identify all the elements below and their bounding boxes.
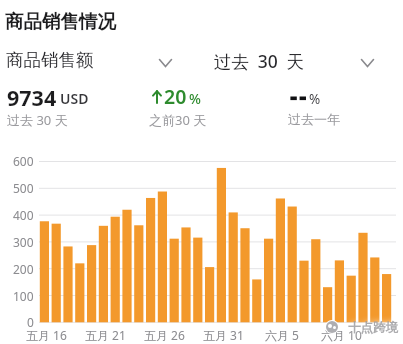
staticText: 500 xyxy=(13,180,34,196)
staticText: 五月 31 xyxy=(203,327,244,343)
staticText: % xyxy=(309,90,321,108)
staticText: 六月 10 xyxy=(321,327,362,343)
button[interactable]: 商品销售额 xyxy=(0,46,185,78)
staticText: 600 xyxy=(13,153,34,169)
staticText: 400 xyxy=(13,207,34,223)
staticText: 过去 30 天 xyxy=(214,49,305,73)
button[interactable]: 过去 30 天 xyxy=(200,46,385,78)
staticText: 300 xyxy=(13,234,34,250)
staticText: 五月 16 xyxy=(26,327,67,343)
staticText: 商品销售情况 xyxy=(5,10,116,33)
staticText: 商品销售额 xyxy=(6,49,94,71)
staticText: 六月 5 xyxy=(265,327,299,343)
staticText: 过去一年 xyxy=(288,111,340,127)
staticText: 之前30 天 xyxy=(149,111,207,129)
staticText: USD xyxy=(60,89,89,108)
staticText: 200 xyxy=(13,261,34,277)
staticText: 五月 21 xyxy=(85,327,126,343)
staticText: 100 xyxy=(13,288,34,304)
staticText: % xyxy=(189,89,201,108)
staticText: 0 xyxy=(27,314,34,330)
staticText: 9734 xyxy=(7,83,57,112)
staticText: 五月 26 xyxy=(144,327,185,343)
staticText: 十点跨境 xyxy=(348,320,398,336)
staticText: 20 xyxy=(164,83,187,110)
staticText: 过去 30 天 xyxy=(7,111,68,129)
